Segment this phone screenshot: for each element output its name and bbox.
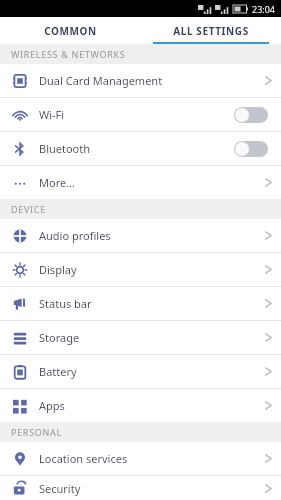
staticText: Storage xyxy=(39,330,255,345)
button[interactable]: Wi-Fi xyxy=(0,98,281,131)
staticText: Wi-Fi xyxy=(39,107,234,122)
staticText: WIRELESS & NETWORKS xyxy=(11,48,126,60)
staticText: PERSONAL xyxy=(11,426,62,438)
button[interactable]: Dual Card Management xyxy=(0,64,281,97)
button[interactable]: Toggle Bluetooth xyxy=(234,141,268,157)
button[interactable]: Status bar xyxy=(0,287,281,320)
button[interactable]: ALL SETTINGS xyxy=(140,17,281,44)
staticText: Display xyxy=(39,262,255,277)
staticText: COMMON xyxy=(44,24,97,38)
staticText: Bluetooth xyxy=(39,141,234,156)
button[interactable]: Audio profiles xyxy=(0,219,281,252)
staticText: More... xyxy=(39,175,255,190)
staticText: Location services xyxy=(39,451,255,466)
button[interactable]: Toggle Wi-Fi xyxy=(234,107,268,123)
button[interactable]: More... xyxy=(0,166,281,199)
button[interactable]: Security xyxy=(0,476,281,500)
button[interactable]: Storage xyxy=(0,321,281,354)
button[interactable]: COMMON xyxy=(0,17,140,44)
button[interactable]: Display xyxy=(0,253,281,286)
button[interactable]: Apps xyxy=(0,389,281,422)
staticText: ALL SETTINGS xyxy=(173,24,249,38)
button[interactable]: Battery xyxy=(0,355,281,388)
staticText: Security xyxy=(39,481,255,496)
staticText: DEVICE xyxy=(11,203,46,215)
button[interactable]: Bluetooth xyxy=(0,132,281,165)
staticText: Battery xyxy=(39,364,255,379)
staticText: Audio profiles xyxy=(39,228,255,243)
staticText: 23:04 xyxy=(252,3,276,15)
staticText: Dual Card Management xyxy=(39,73,255,88)
staticText: Status bar xyxy=(39,296,255,311)
staticText: Apps xyxy=(39,398,255,413)
button[interactable]: Location services xyxy=(0,442,281,475)
